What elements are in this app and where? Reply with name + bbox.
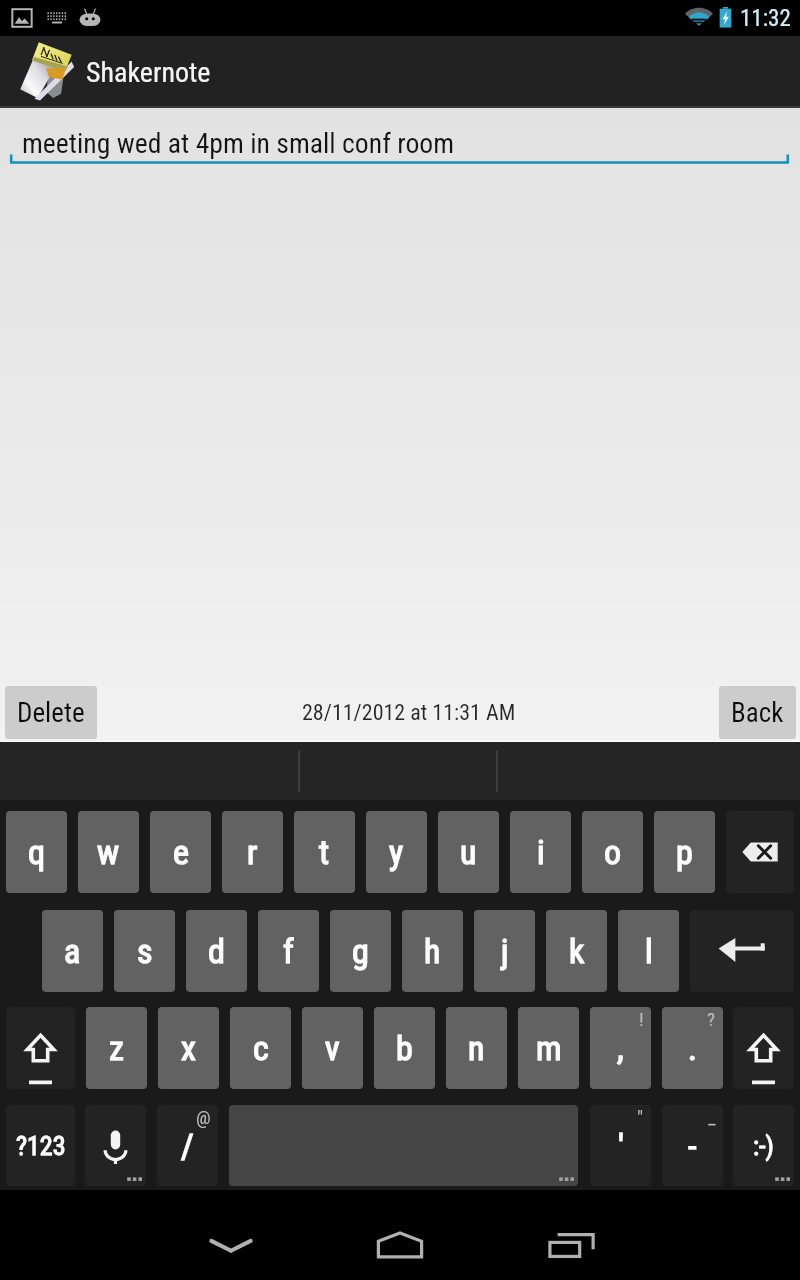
staticText: :-)	[753, 1131, 774, 1161]
staticText: d	[208, 931, 225, 971]
button[interactable]: v	[302, 1007, 363, 1089]
button[interactable]: s	[114, 910, 175, 992]
staticText: f	[283, 931, 294, 971]
staticText: meeting wed at 4pm in small conf room	[22, 127, 455, 159]
staticText: 28/11/2012 at 11:31 AM	[302, 700, 516, 726]
staticText: o	[604, 832, 622, 872]
button[interactable]: p	[654, 811, 715, 893]
staticText: Delete	[17, 697, 85, 729]
button[interactable]: Delete	[5, 686, 97, 739]
staticText: t	[319, 832, 330, 872]
button[interactable]: Shakernote	[0, 41, 221, 103]
button[interactable]: Shift	[733, 1007, 794, 1089]
staticText: v	[325, 1028, 340, 1068]
staticText: w	[97, 832, 120, 872]
staticText: x	[181, 1028, 196, 1068]
staticText: q	[28, 832, 46, 872]
button[interactable]: r	[222, 811, 283, 893]
staticText: .	[688, 1028, 697, 1068]
button[interactable]: Hide keyboard	[191, 1217, 271, 1273]
button[interactable]: e	[150, 811, 211, 893]
button[interactable]: h	[402, 910, 463, 992]
button[interactable]: ,	[590, 1007, 651, 1089]
button[interactable]: i	[510, 811, 571, 893]
button[interactable]: n	[446, 1007, 507, 1089]
staticText: 11:32	[740, 5, 791, 32]
button[interactable]: Backspace	[726, 811, 794, 893]
button[interactable]: Space	[229, 1105, 578, 1186]
button[interactable]: meeting wed at 4pm in small conf room	[0, 108, 800, 177]
staticText: e	[173, 832, 189, 872]
staticText: c	[253, 1028, 269, 1068]
button[interactable]: l	[618, 910, 679, 992]
staticText: l	[645, 931, 653, 971]
button[interactable]: j	[474, 910, 535, 992]
button[interactable]: x	[158, 1007, 219, 1089]
staticText: j	[501, 931, 509, 971]
staticText: p	[676, 832, 693, 872]
staticText: u	[460, 832, 477, 872]
staticText: n	[468, 1028, 485, 1068]
staticText: z	[109, 1028, 124, 1068]
staticText: @	[196, 1106, 211, 1128]
button[interactable]: Recent apps	[532, 1217, 612, 1273]
staticText: r	[247, 832, 258, 872]
staticText: h	[424, 931, 441, 971]
button[interactable]: o	[582, 811, 643, 893]
button[interactable]: Back	[719, 686, 796, 739]
button[interactable]: ?123	[6, 1105, 75, 1186]
staticText: i	[537, 832, 545, 872]
staticText: Back	[731, 697, 784, 729]
staticText: k	[569, 931, 585, 971]
button[interactable]: a	[42, 910, 103, 992]
button[interactable]: .	[662, 1007, 723, 1089]
button[interactable]: :-)	[733, 1105, 794, 1186]
staticText: b	[396, 1028, 413, 1068]
button[interactable]: z	[86, 1007, 147, 1089]
button[interactable]: f	[258, 910, 319, 992]
staticText: g	[352, 931, 369, 971]
button[interactable]: t	[294, 811, 355, 893]
button[interactable]: w	[78, 811, 139, 893]
button[interactable]: '	[590, 1105, 651, 1186]
staticText: y	[389, 832, 404, 872]
button[interactable]: k	[546, 910, 607, 992]
staticText: "	[637, 1106, 644, 1128]
button[interactable]: Home	[360, 1217, 440, 1273]
button[interactable]: m	[518, 1007, 579, 1089]
staticText: _	[708, 1106, 716, 1128]
button[interactable]: u	[438, 811, 499, 893]
button[interactable]: q	[6, 811, 67, 893]
button[interactable]: d	[186, 910, 247, 992]
button[interactable]: Enter	[690, 910, 794, 992]
button[interactable]: Voice input	[85, 1105, 146, 1186]
staticText: '	[618, 1126, 624, 1166]
staticText: s	[137, 931, 153, 971]
button[interactable]: y	[366, 811, 427, 893]
staticText: Shakernote	[86, 56, 211, 89]
button[interactable]: g	[330, 910, 391, 992]
staticText: a	[64, 931, 81, 971]
button[interactable]: c	[230, 1007, 291, 1089]
staticText: ?	[707, 1008, 716, 1030]
staticText: m	[536, 1028, 562, 1068]
button[interactable]: /	[157, 1105, 218, 1186]
button[interactable]: b	[374, 1007, 435, 1089]
staticText: /	[181, 1126, 194, 1166]
staticText: !	[639, 1008, 644, 1030]
staticText: ,	[617, 1028, 624, 1068]
button[interactable]: -	[662, 1105, 723, 1186]
staticText: ?123	[16, 1131, 66, 1161]
button[interactable]: Shift	[6, 1007, 75, 1089]
staticText: -	[688, 1126, 697, 1166]
